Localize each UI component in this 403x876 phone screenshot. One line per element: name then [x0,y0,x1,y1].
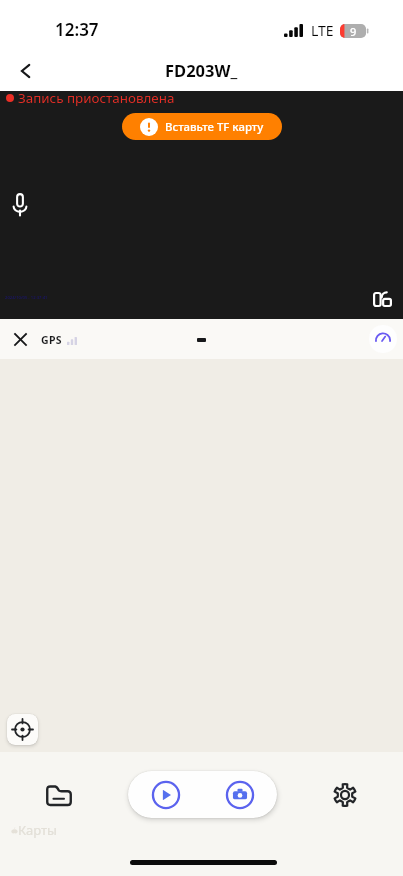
staticText: Вставьте TF карту [165,119,264,135]
button[interactable]: Files [37,773,81,817]
button[interactable]: Back [3,50,47,91]
button[interactable]: Вставьте TF карту [122,113,282,140]
staticText: LTE [311,21,334,40]
button[interactable]: Locate me [7,714,38,745]
button[interactable]: Microphone [6,190,34,218]
staticText: 2024/10/05 - 12:37:41 [5,295,48,301]
button[interactable]: Record video [150,779,181,810]
button[interactable]: Settings [323,773,367,817]
button[interactable]: Speed [369,325,397,353]
staticText: GPS [41,333,62,347]
staticText: 12:37 [55,18,99,41]
button[interactable]: Take photo [224,779,255,810]
staticText: FD203W_ [165,59,238,81]
staticText: Запись приостановлена [18,89,175,107]
staticText: 9 [350,24,357,38]
button[interactable]: Switch view [368,285,396,313]
staticText: Карты [18,821,57,839]
button[interactable]: Close [7,326,34,353]
